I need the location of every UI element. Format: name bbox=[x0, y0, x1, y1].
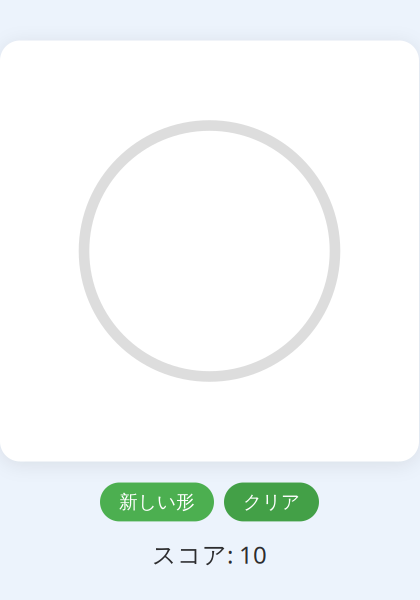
staticText: スコア: 10 bbox=[152, 538, 267, 570]
staticText: クリア bbox=[243, 490, 300, 513]
button[interactable]: 新しい形 bbox=[100, 482, 214, 521]
button[interactable]: クリア bbox=[224, 482, 319, 521]
staticText: 新しい形 bbox=[119, 490, 195, 513]
